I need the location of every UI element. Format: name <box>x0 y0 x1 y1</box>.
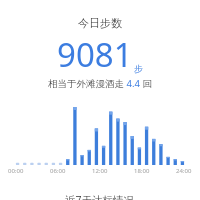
button[interactable]: 近7天达标情况 <box>0 193 200 200</box>
button[interactable]: 今日步数柱状图 <box>0 105 200 165</box>
staticText: 今日步数 <box>78 16 122 30</box>
staticText: 12:00 <box>92 167 108 175</box>
staticText: 步 <box>134 63 143 74</box>
staticText: 00:00 <box>8 167 24 175</box>
staticText: 近7天达标情况 <box>65 193 135 200</box>
staticText: 9081 <box>57 32 133 77</box>
staticText: 18:00 <box>134 167 150 175</box>
staticText: 24:00 <box>176 167 192 175</box>
staticText: 相当于外滩漫酒走 4.4 回 <box>48 77 152 90</box>
staticText: 06:00 <box>50 167 66 175</box>
